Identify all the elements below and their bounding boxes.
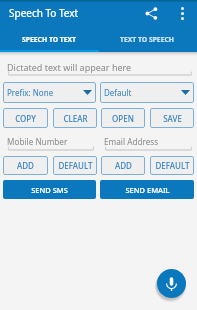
button[interactable]: ADD [3, 156, 48, 175]
staticText: SEND EMAIL [125, 185, 170, 195]
button[interactable]: COPY [3, 108, 48, 128]
button[interactable]: More options [170, 1, 194, 26]
staticText: CLEAR [63, 113, 88, 124]
staticText: SAVE [163, 113, 182, 124]
staticText: SPEECH TO TEXT [22, 35, 77, 44]
staticText: DEFAULT [58, 160, 93, 171]
button[interactable]: DEFAULT [150, 156, 194, 175]
staticText: Email Address [104, 136, 159, 147]
button[interactable]: Share [139, 1, 163, 26]
staticText: SEND SMS [31, 185, 68, 195]
button[interactable]: SPEECH TO TEXT [0, 28, 98, 52]
staticText: Mobile Number [7, 136, 68, 147]
button[interactable]: ADD [101, 156, 145, 175]
button[interactable]: SEND EMAIL [100, 180, 194, 199]
button[interactable]: SAVE [150, 108, 194, 128]
staticText: TEXT TO SPEECH [120, 35, 175, 44]
staticText: Speech To Text [9, 6, 79, 20]
staticText: COPY [15, 113, 36, 124]
button[interactable]: Default [100, 82, 194, 103]
staticText: Prefix: None [7, 87, 54, 98]
staticText: Default [104, 87, 132, 98]
staticText: Dictated text will appear here [7, 61, 132, 73]
button[interactable]: Prefix: None [3, 82, 96, 103]
button[interactable]: SEND SMS [3, 180, 96, 199]
button[interactable]: DEFAULT [53, 156, 97, 175]
staticText: OPEN [112, 113, 134, 124]
button[interactable]: TEXT TO SPEECH [98, 28, 197, 52]
staticText: ADD [115, 160, 132, 171]
staticText: DEFAULT [155, 160, 190, 171]
button[interactable]: CLEAR [53, 108, 97, 128]
button[interactable]: OPEN [101, 108, 145, 128]
button[interactable]: Start voice input [157, 269, 186, 298]
staticText: ADD [17, 160, 34, 171]
